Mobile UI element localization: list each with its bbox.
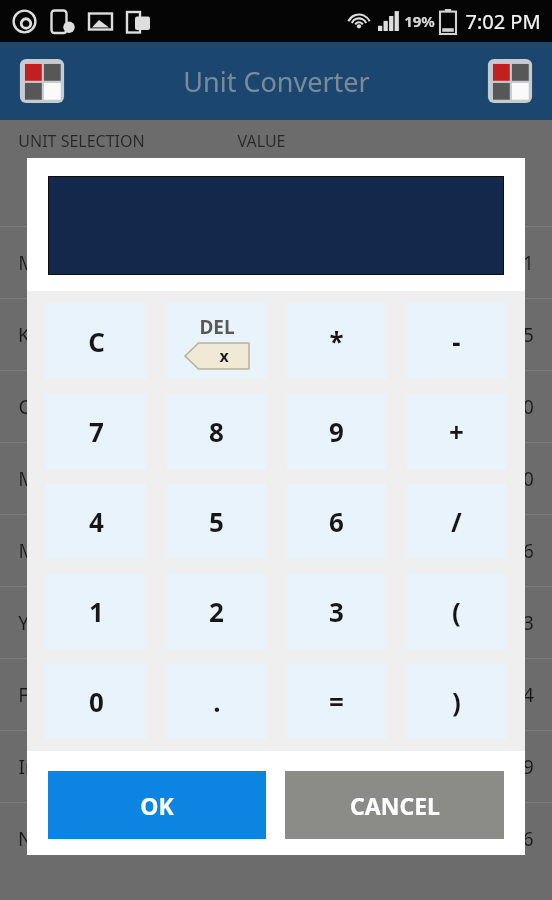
button[interactable]: 0 [46, 664, 146, 739]
button[interactable]: 2 [167, 574, 266, 649]
button[interactable]: ( [407, 574, 506, 649]
staticText: CANCEL [350, 790, 440, 821]
staticText: VALUE [237, 130, 286, 152]
staticText: 3 [523, 610, 534, 636]
button[interactable]: Centimeter [0, 371, 552, 442]
button[interactable]: 5 [167, 484, 266, 559]
button[interactable]: Nautical Mile [0, 803, 552, 874]
staticText: + [449, 414, 464, 449]
button[interactable]: 1 [46, 574, 146, 649]
staticText: 4 [523, 682, 534, 708]
staticText: Inch [18, 754, 58, 780]
staticText: OK [140, 790, 174, 821]
staticText: DEL [199, 314, 235, 340]
staticText: . [213, 684, 221, 719]
staticText: 5 [523, 322, 534, 348]
button[interactable]: 6 [287, 484, 386, 559]
button[interactable]: - [407, 303, 506, 379]
button[interactable]: Menu [484, 55, 536, 107]
button[interactable]: Millimeter [0, 443, 552, 514]
button[interactable]: 8 [167, 394, 266, 469]
button[interactable]: Expression display [48, 176, 504, 275]
staticText: Unit Converter [183, 63, 370, 100]
staticText: 5.4E-6 [479, 826, 534, 852]
staticText: 9 [523, 754, 534, 780]
staticText: = [329, 684, 344, 719]
staticText: * [329, 324, 344, 359]
staticText: ) [452, 684, 461, 719]
button[interactable]: Micrometer [0, 515, 552, 586]
button[interactable]: 4 [46, 484, 146, 559]
staticText: Foot [18, 682, 58, 708]
staticText: 19% [404, 11, 435, 31]
staticText: 6 [329, 504, 344, 539]
staticText: Yard [18, 610, 58, 636]
button[interactable]: 3 [287, 574, 386, 649]
button[interactable]: / [407, 484, 506, 559]
button[interactable]: Meter [0, 227, 552, 298]
staticText: / [451, 504, 462, 539]
button[interactable]: OK [48, 771, 266, 839]
button[interactable]: App icon [16, 55, 68, 107]
button[interactable]: Kilometer [0, 299, 552, 370]
staticText: 2 [209, 594, 224, 629]
button[interactable]: CANCEL [285, 771, 504, 839]
staticText: 5 [209, 504, 224, 539]
staticText: 0 [523, 466, 534, 492]
staticText: Meter [18, 250, 72, 276]
staticText: 7:02 PM [465, 8, 541, 35]
staticText: 4 [89, 504, 104, 539]
staticText: Centimeter [18, 394, 119, 420]
button[interactable]: ) [407, 664, 506, 739]
staticText: Nautical Mile [18, 826, 134, 852]
staticText: ( [452, 594, 461, 629]
button[interactable]: + [407, 394, 506, 469]
button[interactable]: C [46, 303, 146, 379]
button[interactable]: Foot [0, 659, 552, 730]
staticText: 7 [89, 414, 104, 449]
staticText: 0 [523, 394, 534, 420]
staticText: x [219, 345, 229, 367]
staticText: C [88, 324, 105, 359]
staticText: 1 [89, 594, 104, 629]
staticText: Kilometer [18, 322, 105, 348]
staticText: Millimeter [18, 466, 109, 492]
staticText: Micrometer [18, 538, 123, 564]
staticText: 1 [523, 250, 534, 276]
button[interactable]: Yard [0, 587, 552, 658]
button[interactable]: = [287, 664, 386, 739]
staticText: UNIT SELECTION [18, 130, 145, 152]
staticText: 9 [329, 414, 344, 449]
button[interactable]: 7 [46, 394, 146, 469]
staticText: 0 [89, 684, 104, 719]
staticText: 3 [329, 594, 344, 629]
button[interactable]: * [287, 303, 386, 379]
button[interactable]: . [167, 664, 266, 739]
staticText: 6 [523, 538, 534, 564]
staticText: 8 [209, 414, 224, 449]
button[interactable]: Delete [167, 303, 266, 379]
button[interactable]: 9 [287, 394, 386, 469]
button[interactable]: Inch [0, 731, 552, 802]
staticText: - [452, 324, 461, 359]
